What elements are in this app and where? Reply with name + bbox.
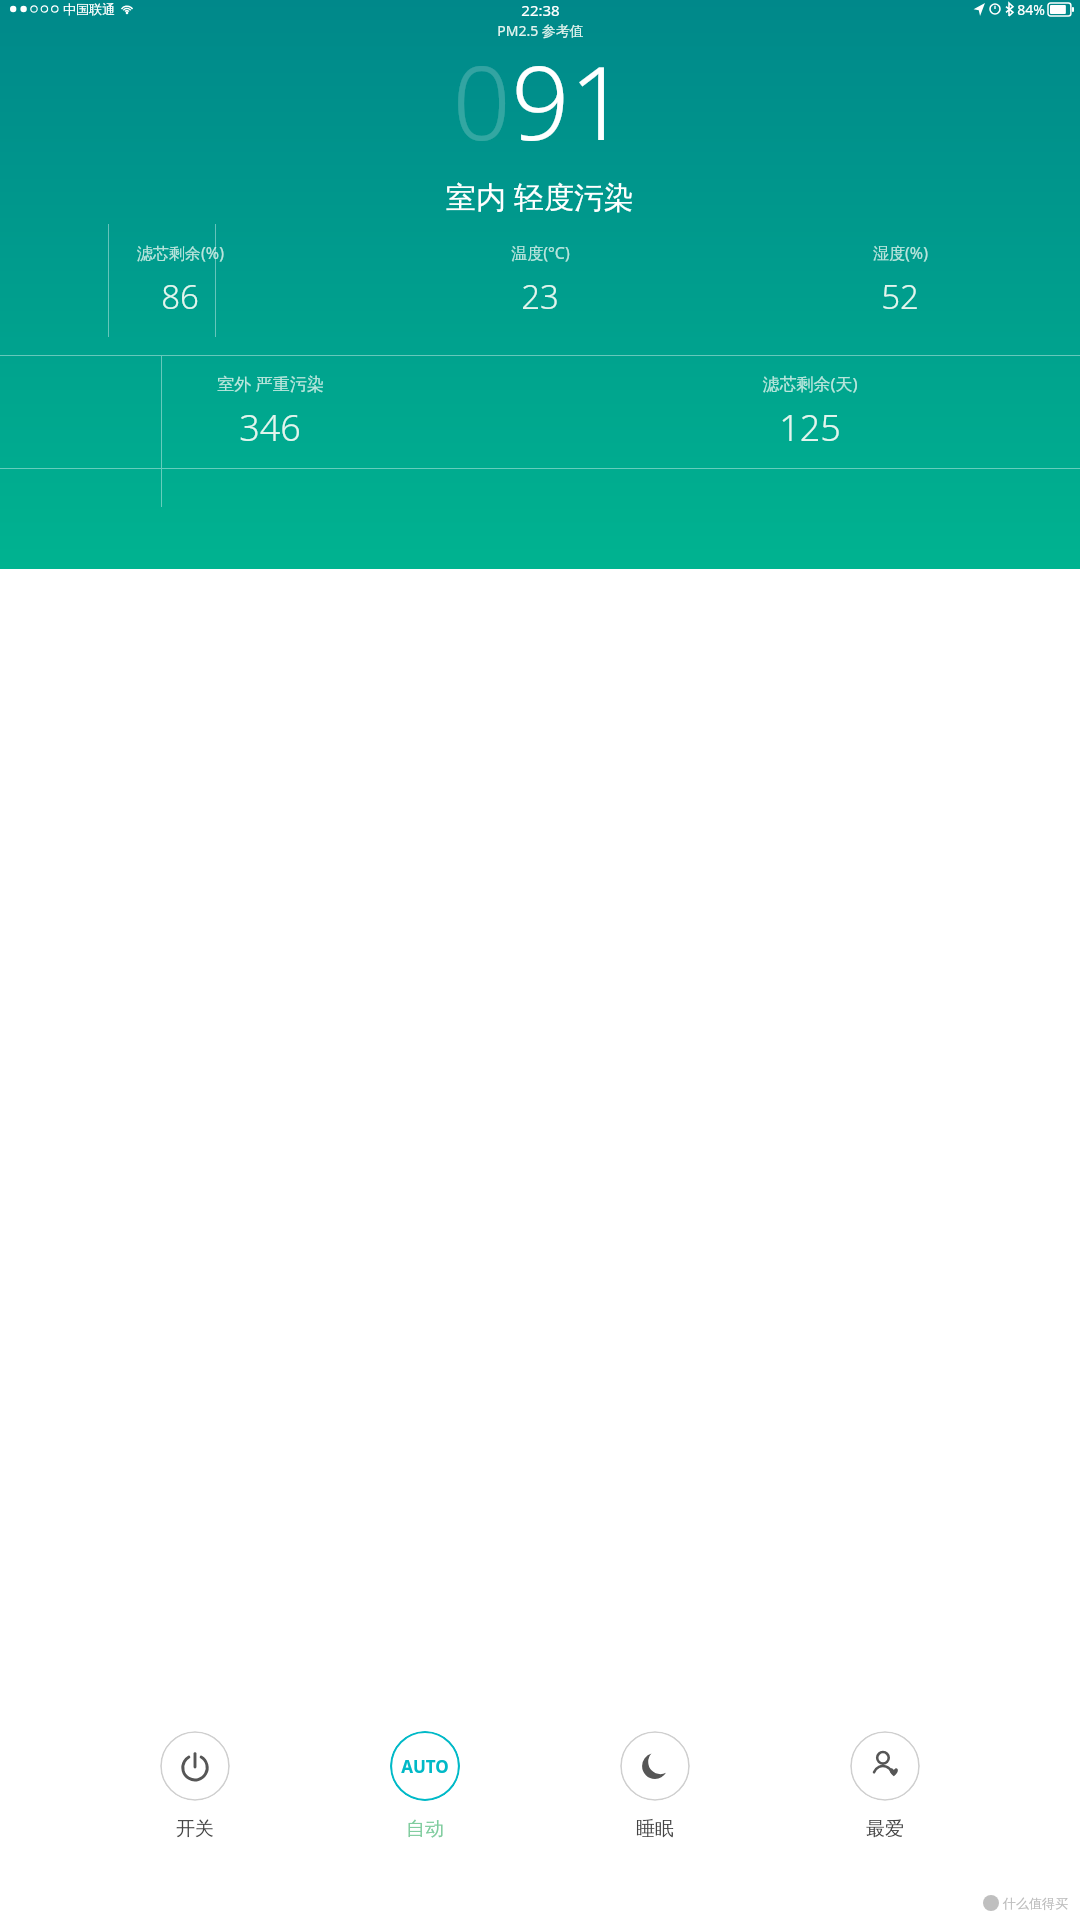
staticText: AUTO (401, 1755, 449, 1778)
button[interactable]: 室外 严重污染 (0, 356, 540, 468)
staticText: 中国联通 (63, 1, 115, 17)
staticText: PM2.5 参考值 (497, 21, 584, 40)
staticText: 52 (881, 274, 919, 319)
staticText: 室内 轻度污染 (446, 176, 634, 217)
button[interactable]: 最爱 (850, 1731, 920, 1841)
staticText: 125 (779, 403, 841, 452)
staticText: 23 (521, 274, 559, 319)
staticText: 开关 (176, 1817, 214, 1841)
button[interactable]: 滤芯剩余(%) (0, 224, 360, 337)
staticText: 温度(°C) (511, 242, 570, 264)
button[interactable]: 睡眠 (620, 1731, 690, 1841)
staticText: 86 (161, 274, 199, 319)
staticText: 室外 严重污染 (217, 372, 324, 395)
staticText: 84% (1017, 0, 1045, 18)
staticText: 0 (452, 31, 511, 170)
staticText: 睡眠 (636, 1817, 674, 1841)
staticText: 滤芯剩余(%) (137, 242, 224, 264)
staticText: 什么值得买 (1003, 1895, 1068, 1911)
staticText: 346 (239, 403, 301, 452)
staticText: 91 (511, 31, 628, 170)
staticText: 22:38 (521, 0, 560, 18)
button[interactable]: 自动 (390, 1731, 460, 1841)
button[interactable]: 湿度(%) (720, 224, 1080, 337)
button[interactable]: 开关 (160, 1731, 230, 1841)
staticText: 湿度(%) (873, 242, 928, 264)
button[interactable]: 滤芯剩余(天) (540, 356, 1080, 468)
staticText: 自动 (406, 1817, 444, 1841)
staticText: 最爱 (866, 1817, 904, 1841)
button[interactable]: 温度(°C) (360, 224, 720, 337)
staticText: 滤芯剩余(天) (762, 372, 858, 395)
